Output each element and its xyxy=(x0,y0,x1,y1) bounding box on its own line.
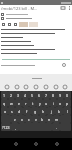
staticText: j xyxy=(51,109,52,114)
button[interactable]: x xyxy=(18,115,25,123)
button[interactable]: m xyxy=(53,115,60,123)
button[interactable]: l xyxy=(63,107,71,115)
staticText: z xyxy=(14,117,16,122)
button[interactable]: 1 xyxy=(1,91,8,99)
staticText: b xyxy=(41,117,44,122)
staticText: a xyxy=(4,109,6,114)
staticText: n xyxy=(48,117,51,122)
button[interactable]: 3 xyxy=(15,91,22,99)
staticText: i xyxy=(53,101,54,106)
button[interactable]: Keyboard tool xyxy=(4,84,10,90)
staticText: d xyxy=(18,109,21,114)
button[interactable]: 7 xyxy=(43,91,50,99)
button[interactable]: . xyxy=(52,123,60,131)
staticText: u xyxy=(45,101,48,106)
button[interactable]: Keyboard tool xyxy=(43,84,49,90)
button[interactable]: Home xyxy=(31,139,41,149)
staticText: 1 xyxy=(3,93,6,98)
staticText: 2 xyxy=(10,93,13,98)
staticText: p xyxy=(66,101,69,106)
button[interactable] xyxy=(0,16,72,20)
button[interactable]: n xyxy=(46,115,53,123)
staticText: 7 xyxy=(45,93,48,98)
button[interactable]: Back xyxy=(11,139,21,149)
button[interactable]: 6 xyxy=(36,91,43,99)
button[interactable]: 2 xyxy=(8,91,15,99)
button[interactable]: b xyxy=(39,115,46,123)
button[interactable]: g xyxy=(31,107,39,115)
staticText: y xyxy=(39,101,41,106)
button[interactable]: v xyxy=(32,115,39,123)
staticText: 4 xyxy=(24,93,27,98)
button[interactable]: j xyxy=(47,107,55,115)
button[interactable]: a xyxy=(1,107,8,115)
button[interactable]: i xyxy=(50,99,57,107)
staticText: l xyxy=(67,109,68,114)
staticText: 9 xyxy=(59,93,62,98)
button[interactable]: 8 xyxy=(50,91,57,99)
button[interactable]: , xyxy=(11,123,19,131)
button[interactable]: ?123 xyxy=(1,123,11,131)
staticText: g xyxy=(34,109,37,114)
staticText: e xyxy=(18,101,20,106)
button[interactable]: 0 xyxy=(64,91,71,99)
button[interactable]: More options xyxy=(66,5,72,11)
button[interactable]: /mobi/123 bill - M... xyxy=(1,6,59,11)
button[interactable]: Refresh xyxy=(62,63,66,67)
button[interactable]: p xyxy=(64,99,71,107)
button[interactable]: 5 xyxy=(29,91,36,99)
button[interactable]: w xyxy=(8,99,15,107)
button[interactable]: r xyxy=(22,99,29,107)
staticText: f xyxy=(26,109,28,114)
button[interactable] xyxy=(0,12,72,16)
staticText: , xyxy=(15,125,16,130)
button[interactable]: Recents xyxy=(52,139,62,149)
staticText: t xyxy=(32,101,34,106)
staticText: ?123 xyxy=(2,125,10,130)
button[interactable]: u xyxy=(43,99,50,107)
button[interactable]: o xyxy=(57,99,64,107)
button[interactable]: Keyboard tool xyxy=(53,84,59,90)
staticText: 3 xyxy=(17,93,20,98)
button[interactable]: t xyxy=(29,99,36,107)
button[interactable]: 9 xyxy=(57,91,64,99)
staticText: h xyxy=(42,109,45,114)
button[interactable]: e xyxy=(15,99,22,107)
staticText: k xyxy=(58,109,60,114)
button[interactable]: c xyxy=(25,115,32,123)
button[interactable]: Keyboard tool xyxy=(23,84,29,90)
staticText: 8 xyxy=(52,93,55,98)
staticText: 5 xyxy=(31,93,34,98)
staticText: . xyxy=(56,125,57,130)
staticText: m xyxy=(55,117,59,122)
staticText: c xyxy=(28,117,30,122)
staticText: v xyxy=(35,117,37,122)
button[interactable]: z xyxy=(11,115,18,123)
button[interactable]: f xyxy=(23,107,31,115)
button[interactable]: Keyboard tool xyxy=(33,84,39,90)
staticText: 0 xyxy=(66,93,69,98)
staticText: s xyxy=(11,109,13,114)
button[interactable]: Format xyxy=(13,22,18,27)
button[interactable]: s xyxy=(8,107,15,115)
button[interactable]: Format xyxy=(7,22,12,27)
button[interactable]: k xyxy=(55,107,63,115)
button[interactable]: Keyboard tool xyxy=(62,84,68,90)
button[interactable]: Format xyxy=(1,22,6,27)
staticText: o xyxy=(59,101,62,106)
button[interactable]: y xyxy=(36,99,43,107)
button[interactable]: Attach xyxy=(59,5,66,11)
button[interactable]: Keyboard tool xyxy=(14,84,20,90)
button[interactable]: q xyxy=(1,99,8,107)
staticText: w xyxy=(10,101,13,106)
staticText: x xyxy=(21,117,23,122)
button[interactable]: h xyxy=(39,107,47,115)
button[interactable]: d xyxy=(15,107,23,115)
button[interactable]: 4 xyxy=(22,91,29,99)
